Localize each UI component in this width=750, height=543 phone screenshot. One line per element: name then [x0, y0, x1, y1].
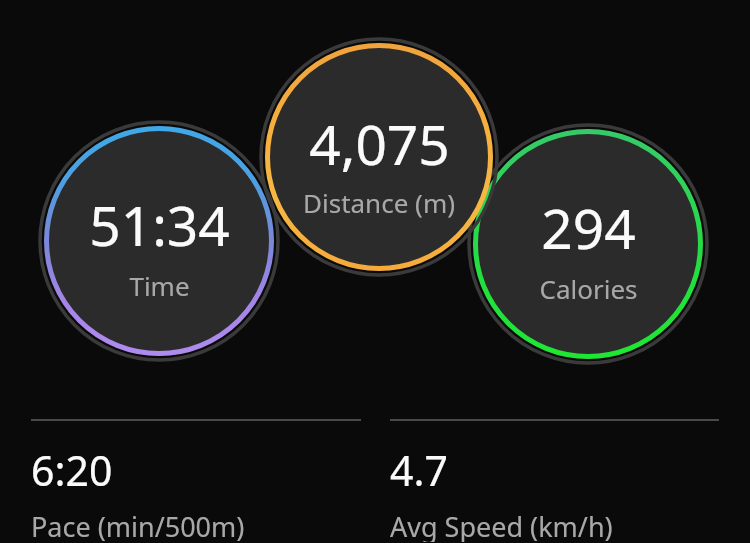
- staticText: Distance (m): [303, 185, 455, 220]
- staticText: Calories: [539, 271, 638, 306]
- staticText: 6:20: [31, 442, 113, 498]
- button[interactable]: Calories 294: [468, 124, 708, 364]
- staticText: Avg Speed (km/h): [390, 508, 613, 542]
- staticText: 51:34: [89, 187, 230, 262]
- staticText: 4,075: [309, 106, 450, 181]
- button[interactable]: 6:20: [31, 442, 361, 542]
- button[interactable]: 4.7: [390, 442, 720, 542]
- staticText: 294: [541, 190, 636, 265]
- staticText: Time: [129, 268, 190, 303]
- staticText: 4.7: [390, 442, 448, 498]
- staticText: Pace (min/500m): [31, 508, 245, 542]
- button[interactable]: Time 51:34: [39, 121, 279, 361]
- button[interactable]: Distance 4,075 meters: [260, 38, 498, 276]
